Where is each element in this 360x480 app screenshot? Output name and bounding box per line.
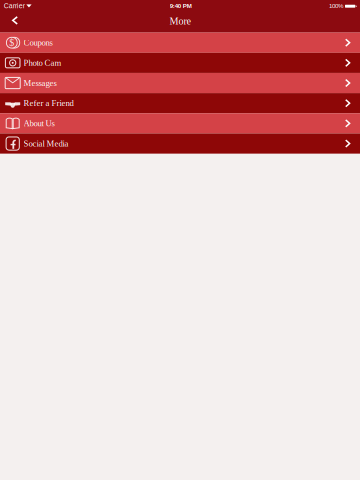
staticText: Social Media [24,139,69,148]
staticText: Messages [24,78,57,88]
staticText: More [169,15,190,27]
staticText: Refer a Friend [24,98,74,108]
button[interactable]: Refer a Friend [0,93,360,113]
staticText: Coupons [24,38,53,47]
staticText: $ [9,37,14,48]
staticText: 9:40 PM [170,2,192,9]
button[interactable]: Social Media [0,133,360,154]
staticText: 100% [329,2,343,9]
button[interactable]: Messages [0,73,360,93]
button[interactable]: $ [0,33,360,53]
button[interactable]: Back [0,14,25,31]
staticText: Carrier [4,2,25,10]
button[interactable]: About Us [0,113,360,133]
staticText: Photo Cam [24,58,62,68]
staticText: About Us [24,119,55,128]
button[interactable]: Photo Cam [0,53,360,73]
